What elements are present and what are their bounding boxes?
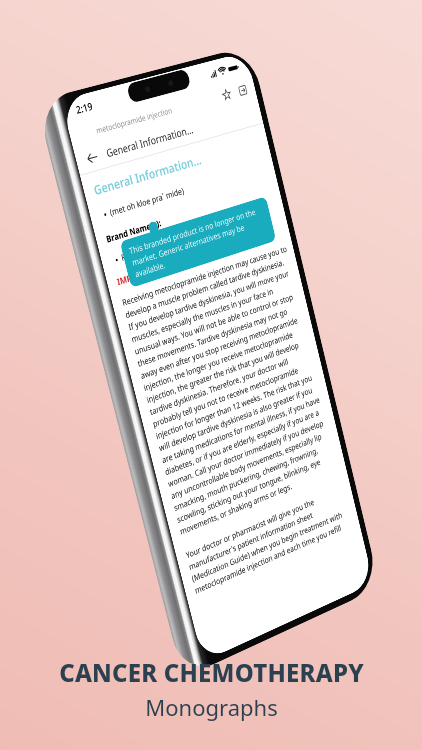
staticText: This branded product is no longer on the…	[128, 204, 269, 280]
staticText: Brand Name(s):	[105, 217, 162, 245]
staticText: metoclopramide injection	[95, 105, 173, 136]
staticText: 2:19	[74, 99, 94, 116]
button[interactable]: Back	[83, 147, 101, 168]
staticText: (met oh kloe pra´ mide)	[108, 185, 185, 218]
button[interactable]: Bookmark	[220, 86, 234, 103]
staticText: Receiving metoclopramide injection may c…	[121, 243, 354, 596]
staticText: Monographs	[145, 692, 278, 722]
button[interactable]: Share	[236, 82, 250, 99]
staticText: CANCER CHEMOTHERAPY	[59, 656, 364, 689]
staticText: IMPORTANT WARNING:	[116, 250, 199, 288]
staticText: Reglan** / Various available generically	[120, 213, 245, 264]
staticText: General Information...	[105, 122, 195, 161]
staticText: General Information...	[92, 151, 203, 199]
